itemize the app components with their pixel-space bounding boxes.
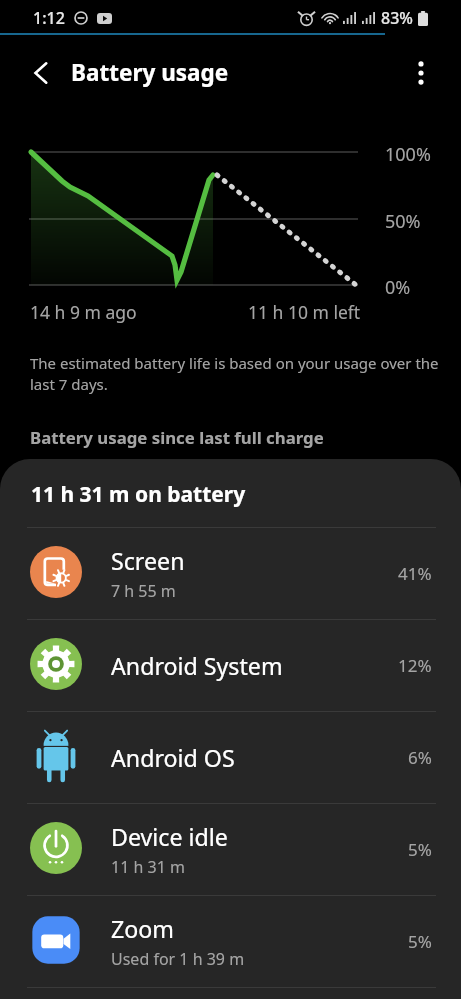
staticText: 11 h 31 m on battery bbox=[31, 480, 246, 509]
staticText: Device idle bbox=[111, 821, 228, 853]
staticText: 14 h 9 m ago bbox=[30, 300, 137, 324]
staticText: 0% bbox=[385, 275, 411, 300]
button[interactable]: Device idle bbox=[0, 804, 461, 895]
staticText: The estimated battery life is based on y… bbox=[30, 353, 439, 395]
staticText: 11 h 10 m left bbox=[248, 300, 361, 324]
button[interactable]: Android System bbox=[0, 620, 461, 711]
staticText: 11 h 31 m bbox=[111, 856, 185, 878]
staticText: Android OS bbox=[111, 742, 235, 774]
staticText: 6% bbox=[408, 746, 432, 769]
button[interactable]: Zoom bbox=[0, 896, 461, 987]
staticText: 41% bbox=[398, 562, 432, 585]
button[interactable]: Android OS bbox=[0, 712, 461, 803]
staticText: Zoom bbox=[111, 913, 175, 945]
button[interactable]: Back bbox=[18, 50, 64, 96]
staticText: Android System bbox=[111, 650, 283, 682]
staticText: 100% bbox=[385, 142, 431, 167]
staticText: 5% bbox=[408, 838, 432, 861]
staticText: 1:12 bbox=[33, 7, 65, 29]
staticText: Battery usage since last full charge bbox=[30, 426, 324, 449]
staticText: 83% bbox=[381, 7, 413, 29]
staticText: Battery usage bbox=[71, 57, 229, 88]
staticText: 5% bbox=[408, 930, 432, 953]
staticText: 12% bbox=[398, 654, 432, 677]
button[interactable]: More options bbox=[398, 50, 444, 96]
staticText: 7 h 55 m bbox=[111, 580, 176, 602]
staticText: 50% bbox=[385, 209, 421, 234]
staticText: Screen bbox=[111, 545, 185, 577]
button[interactable]: Screen bbox=[0, 528, 461, 619]
staticText: Used for 1 h 39 m bbox=[111, 948, 245, 970]
